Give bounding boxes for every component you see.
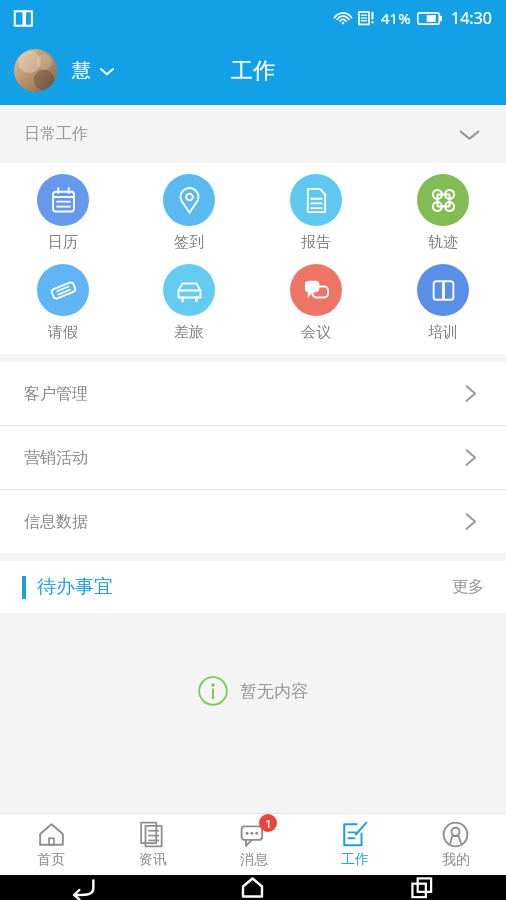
- staticText: 待办事宜: [37, 575, 113, 599]
- staticText: 培训: [428, 323, 458, 342]
- button[interactable]: 轨迹: [379, 170, 506, 256]
- button[interactable]: 会议: [252, 260, 379, 346]
- staticText: 1: [265, 816, 272, 831]
- staticText: 签到: [174, 233, 204, 252]
- staticText: 工作: [341, 851, 369, 869]
- button[interactable]: 差旅: [126, 260, 252, 346]
- button[interactable]: 慧: [0, 49, 115, 92]
- button[interactable]: 签到: [126, 170, 252, 256]
- button[interactable]: Recent apps: [337, 875, 506, 900]
- staticText: 日常工作: [24, 124, 88, 144]
- staticText: 慧: [72, 59, 91, 83]
- button[interactable]: 请假: [0, 260, 126, 346]
- button[interactable]: 我的: [405, 814, 506, 875]
- staticText: 工作: [231, 57, 275, 85]
- staticText: 我的: [442, 851, 470, 869]
- staticText: 41%: [381, 8, 411, 28]
- staticText: 报告: [301, 233, 331, 252]
- staticText: 请假: [48, 323, 78, 342]
- button[interactable]: 营销活动: [0, 426, 506, 489]
- staticText: 差旅: [174, 323, 204, 342]
- staticText: 日历: [48, 233, 78, 252]
- staticText: 信息数据: [24, 512, 88, 532]
- button[interactable]: 工作: [304, 814, 405, 875]
- button[interactable]: 资讯: [102, 814, 203, 875]
- button[interactable]: 日历: [0, 170, 126, 256]
- staticText: 暂无内容: [240, 681, 308, 702]
- staticText: 轨迹: [428, 233, 458, 252]
- staticText: 更多: [452, 577, 484, 597]
- staticText: 14:30: [451, 7, 492, 29]
- staticText: 首页: [37, 851, 65, 869]
- button[interactable]: Back: [0, 875, 168, 900]
- staticText: 客户管理: [24, 384, 88, 404]
- button[interactable]: 更多: [452, 577, 506, 597]
- button[interactable]: 信息数据: [0, 490, 506, 553]
- staticText: 营销活动: [24, 448, 88, 468]
- button[interactable]: 培训: [379, 260, 506, 346]
- button[interactable]: 报告: [252, 170, 379, 256]
- button[interactable]: 客户管理: [0, 362, 506, 425]
- staticText: 资讯: [139, 851, 167, 869]
- button[interactable]: Home: [168, 875, 337, 900]
- staticText: 消息: [240, 851, 268, 869]
- button[interactable]: 日常工作: [0, 105, 506, 163]
- button[interactable]: 1: [203, 814, 304, 875]
- staticText: 会议: [301, 323, 331, 342]
- button[interactable]: 首页: [0, 814, 102, 875]
